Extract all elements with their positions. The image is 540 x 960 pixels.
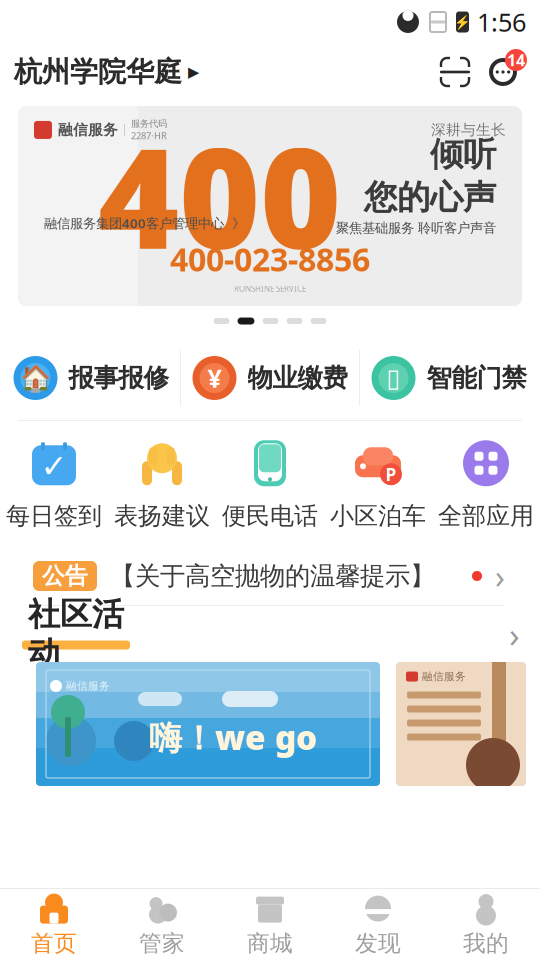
button[interactable]: 消息 bbox=[478, 47, 540, 97]
staticText: 服务代码 2287·HR bbox=[131, 118, 167, 142]
button[interactable]: 社区活动 bbox=[396, 662, 526, 786]
button[interactable]: 公告 bbox=[0, 547, 540, 605]
staticText: 商城 bbox=[247, 930, 293, 957]
button[interactable]: 400客户管理中心广告 bbox=[18, 106, 522, 306]
staticText: 全部应用 bbox=[438, 501, 534, 531]
staticText: › bbox=[495, 555, 505, 597]
staticText: › bbox=[509, 611, 520, 657]
staticText: 聚焦基础服务 聆听客户声音 bbox=[336, 220, 496, 236]
staticText: RONSHINE SERVICE bbox=[234, 283, 306, 294]
staticText: 融信服务 bbox=[66, 679, 110, 692]
button[interactable]: 管家 bbox=[108, 889, 216, 960]
button[interactable]: 发现 bbox=[324, 889, 432, 960]
button[interactable]: 社区活动：嗨 we go bbox=[36, 662, 380, 786]
staticText: ▶ bbox=[188, 64, 199, 80]
staticText: 倾听 bbox=[430, 134, 496, 175]
staticText: 报事报修 bbox=[68, 362, 168, 393]
button[interactable]: ¥ bbox=[181, 336, 359, 420]
staticText: 14 bbox=[507, 49, 525, 71]
button[interactable]: 商城 bbox=[216, 889, 324, 960]
button[interactable]: ✓ bbox=[0, 421, 108, 547]
button[interactable]: 全部应用 bbox=[432, 421, 540, 547]
staticText: 智能门禁 bbox=[426, 362, 526, 393]
staticText: 融信服务 bbox=[58, 121, 118, 139]
staticText: ⚡ bbox=[454, 14, 471, 30]
staticText: P bbox=[385, 463, 396, 486]
staticText: ▯ bbox=[386, 364, 400, 392]
staticText: 您的心声 bbox=[364, 177, 496, 218]
button[interactable]: 杭州学院华庭 bbox=[0, 47, 199, 97]
staticText: 【关于高空抛物的温馨提示】 bbox=[110, 560, 435, 591]
staticText: 杭州学院华庭 bbox=[14, 55, 182, 89]
button[interactable]: 扫一扫 bbox=[432, 49, 478, 95]
button[interactable]: 表扬建议 bbox=[108, 421, 216, 547]
staticText: 小区泊车 bbox=[330, 501, 426, 531]
button[interactable]: 便民电话 bbox=[216, 421, 324, 547]
staticText: 发现 bbox=[355, 930, 401, 957]
button[interactable]: 社区活动 bbox=[0, 606, 540, 662]
staticText: 便民电话 bbox=[222, 501, 318, 531]
staticText: 社区活动 bbox=[28, 595, 124, 673]
staticText: 🏠 bbox=[19, 363, 51, 392]
staticText: 管家 bbox=[139, 930, 185, 957]
button[interactable]: P bbox=[324, 421, 432, 547]
staticText: 1:56 bbox=[477, 5, 526, 39]
staticText: 物业缴费 bbox=[247, 362, 347, 393]
staticText: 表扬建议 bbox=[114, 501, 210, 531]
staticText: ¥ bbox=[207, 361, 221, 395]
staticText: 首页 bbox=[31, 930, 77, 957]
staticText: 深耕与生长 bbox=[431, 121, 506, 139]
staticText: 400-023-8856 bbox=[170, 238, 370, 280]
staticText: 嗨！we go bbox=[149, 715, 317, 759]
button[interactable]: 首页 bbox=[0, 889, 108, 960]
staticText: 我的 bbox=[463, 930, 509, 957]
staticText: ✓ bbox=[40, 448, 67, 484]
button[interactable]: ▯ bbox=[360, 336, 538, 420]
staticText: 融信服务 bbox=[422, 670, 466, 683]
staticText: 融信服务集团400客户管理中心 》 bbox=[44, 214, 245, 232]
button[interactable]: 🏠 bbox=[2, 336, 180, 420]
button[interactable]: 我的 bbox=[432, 889, 540, 960]
staticText: 公告 bbox=[42, 562, 88, 590]
staticText: 每日签到 bbox=[6, 501, 102, 531]
staticText: 400 bbox=[98, 103, 341, 287]
